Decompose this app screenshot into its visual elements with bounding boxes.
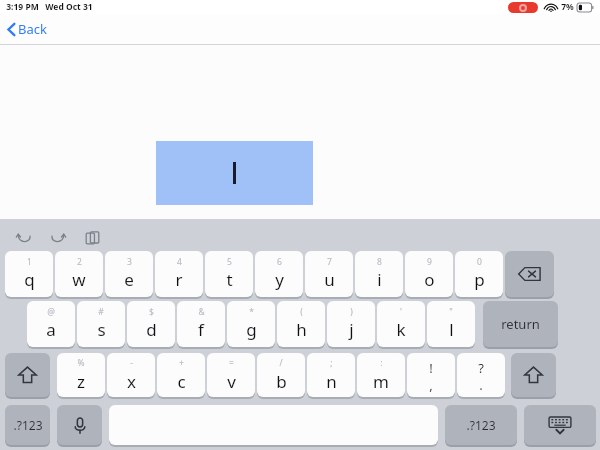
button[interactable]: / [257,353,305,397]
staticText: - [130,357,133,369]
button[interactable]: & [177,301,225,347]
staticText: j [349,318,354,341]
button[interactable]: 3 [105,251,153,297]
button[interactable]: ; [307,353,355,397]
staticText: r [175,268,183,291]
staticText: 1 [27,256,32,268]
button[interactable]: 9 [405,251,453,297]
button[interactable]: @ [27,301,75,347]
staticText: . [479,376,483,394]
button[interactable]: 7 [305,251,353,297]
staticText: b [276,370,287,393]
button[interactable]: 0 [455,251,503,297]
staticText: c [177,370,186,393]
staticText: q [24,268,35,291]
staticText: ) [350,306,353,318]
staticText: 5 [227,256,232,268]
button[interactable]: : [357,353,405,397]
staticText: i [377,268,382,291]
staticText: ? [478,359,484,377]
button[interactable]: - [107,353,155,397]
staticText: s [97,318,106,341]
staticText: x [127,370,136,393]
button[interactable]: Shift [5,353,50,397]
staticText: 3:19 PM [6,1,39,13]
staticText: : [380,357,383,369]
staticText: .?123 [13,417,43,433]
button[interactable]: = [207,353,255,397]
button[interactable]: Hide keyboard [524,405,596,445]
button[interactable]: Dictation [57,405,102,445]
staticText: ' [400,306,402,318]
staticText: o [424,268,435,291]
staticText: e [124,268,134,291]
staticText: + [179,357,184,369]
staticText: l [449,318,454,341]
staticText: % [77,357,85,369]
staticText: m [373,370,389,393]
button[interactable]: Delete [505,251,554,297]
staticText: Wed Oct 31 [45,1,93,13]
button[interactable]: ! [407,353,455,397]
staticText: " [449,306,453,318]
staticText: 9 [427,256,432,268]
staticText: 4 [177,256,182,268]
staticText: & [198,306,205,318]
button[interactable]: 5 [205,251,253,297]
button[interactable]: Paste [82,228,102,248]
staticText: f [198,318,204,341]
staticText: ! [429,359,433,377]
button[interactable]: + [157,353,205,397]
button[interactable]: return [483,301,558,347]
staticText: n [326,370,337,393]
staticText: h [296,318,307,341]
button[interactable]: Back [7,20,47,38]
staticText: $ [149,306,154,318]
staticText: 6 [277,256,282,268]
staticText: a [46,318,56,341]
button[interactable] [156,141,313,205]
staticText: Back [18,20,47,38]
staticText: z [77,370,85,393]
button[interactable]: ' [377,301,425,347]
staticText: k [396,318,406,341]
button[interactable]: ? [457,353,505,397]
button[interactable]: Undo [14,228,34,248]
button[interactable]: 6 [255,251,303,297]
button[interactable]: 2 [55,251,103,297]
staticText: v [227,370,236,393]
button[interactable]: 4 [155,251,203,297]
staticText: ( [300,306,303,318]
button[interactable]: ( [277,301,325,347]
button[interactable]: .?123 [5,405,50,445]
button[interactable]: % [57,353,105,397]
staticText: p [474,268,485,291]
staticText: 8 [377,256,382,268]
button[interactable]: .?123 [445,405,517,445]
staticText: y [275,268,284,291]
button[interactable]: 8 [355,251,403,297]
button[interactable]: Shift [511,353,556,397]
staticText: # [98,306,104,318]
button[interactable]: " [427,301,475,347]
staticText: u [324,268,335,291]
button[interactable]: ) [327,301,375,347]
button[interactable]: $ [127,301,175,347]
staticText: d [146,318,157,341]
staticText: , [429,376,433,394]
staticText: 0 [477,256,482,268]
staticText: return [501,315,540,333]
button[interactable]: Redo [48,228,68,248]
staticText: 7 [327,256,332,268]
staticText: * [249,306,254,318]
staticText: w [72,268,86,291]
staticText: .?123 [466,417,496,433]
staticText: ; [330,357,333,369]
staticText: 2 [77,256,82,268]
staticText: 3 [127,256,132,268]
staticText: 7% [561,1,574,13]
button[interactable]: * [227,301,275,347]
button[interactable]: 1 [5,251,53,297]
button[interactable]: # [77,301,125,347]
